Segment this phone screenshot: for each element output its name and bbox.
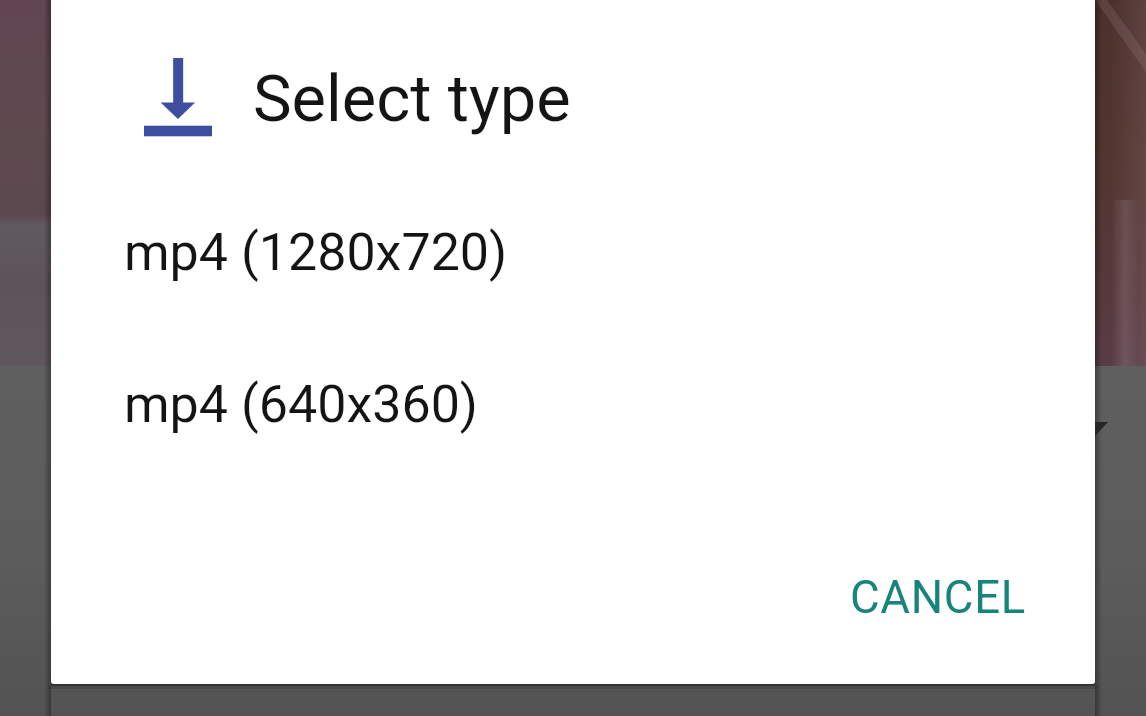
other: Download (144, 58, 212, 137)
button[interactable]: mp4 (1280x720) (51, 200, 1095, 304)
button[interactable]: mp4 (640x360) (51, 352, 1095, 456)
button[interactable]: CANCEL (833, 558, 1043, 636)
staticText: mp4 (1280x720) (124, 222, 508, 283)
staticText: mp4 (640x360) (124, 374, 478, 435)
staticText: CANCEL (850, 571, 1026, 624)
staticText: Select type (253, 61, 571, 137)
